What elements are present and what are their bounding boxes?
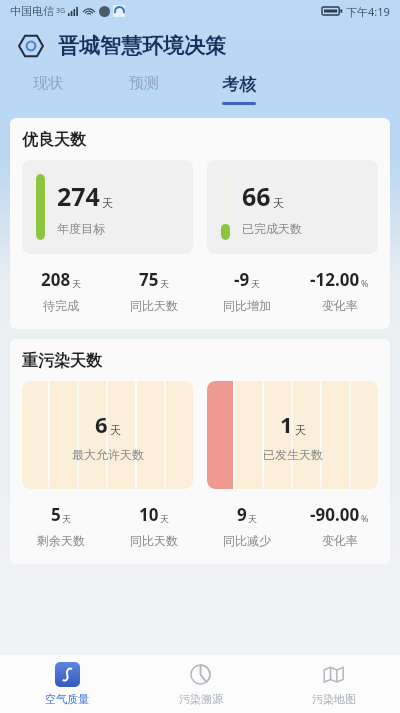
staticText: 3G (56, 6, 66, 16)
staticText: 最大允许天数 (72, 447, 144, 462)
staticText: 优良天数 (22, 130, 86, 150)
staticText: 天 (295, 423, 306, 437)
button[interactable]: 75 (107, 268, 200, 313)
staticText: % (361, 512, 369, 524)
staticText: -12.00 (310, 268, 360, 291)
other: 污染地图 (321, 662, 346, 687)
button[interactable]: Logo (16, 31, 46, 61)
staticText: 75 (139, 268, 159, 291)
staticText: 208 (41, 268, 71, 291)
staticText: 天 (102, 196, 113, 210)
staticText: 天 (160, 278, 169, 289)
button[interactable]: 5 (14, 503, 107, 548)
staticText: -9 (234, 268, 250, 291)
staticText: 同比天数 (130, 298, 178, 313)
staticText: 重污染天数 (22, 351, 102, 371)
button[interactable]: -9 (200, 268, 293, 313)
staticText: 同比天数 (130, 533, 178, 548)
button[interactable]: 274 (22, 160, 193, 254)
staticText: 274 (57, 179, 100, 213)
button[interactable]: 208 (14, 268, 107, 313)
other: 污染溯源 (188, 662, 213, 687)
staticText: 天 (273, 196, 284, 210)
button[interactable]: 10 (107, 503, 200, 548)
staticText: 年度目标 (57, 221, 105, 236)
staticText: 天 (72, 278, 81, 289)
button[interactable]: 预测 (96, 70, 191, 112)
button[interactable]: -90.00 (293, 503, 386, 548)
button[interactable]: 空气质量 (0, 655, 134, 713)
staticText: 考核 (222, 74, 256, 95)
staticText: 现状 (33, 74, 63, 93)
staticText: 天 (110, 423, 121, 437)
staticText: 天 (62, 513, 71, 524)
staticText: 天 (160, 513, 169, 524)
button[interactable]: 污染溯源 (134, 655, 267, 713)
staticText: 天 (248, 513, 257, 524)
button[interactable]: 1 (207, 381, 378, 489)
staticText: 已发生天数 (263, 447, 323, 462)
staticText: 同比减少 (223, 533, 271, 548)
staticText: 污染溯源 (179, 692, 223, 706)
button[interactable]: 6 (22, 381, 193, 489)
staticText: 5 (51, 503, 61, 526)
staticText: 预测 (129, 74, 159, 93)
staticText: 空气质量 (45, 692, 89, 706)
staticText: 9 (237, 503, 247, 526)
staticText: 天 (251, 278, 260, 289)
button[interactable]: 66 (207, 160, 378, 254)
staticText: 变化率 (322, 298, 358, 313)
button[interactable]: 污染地图 (267, 655, 400, 713)
staticText: 污染地图 (312, 692, 356, 706)
button[interactable]: 考核 (191, 70, 286, 112)
other: 空气质量 (55, 662, 80, 687)
staticText: 变化率 (322, 533, 358, 548)
staticText: 已完成天数 (242, 221, 302, 236)
staticText: -90.00 (310, 503, 360, 526)
staticText: 剩余天数 (37, 533, 85, 548)
button[interactable]: 9 (200, 503, 293, 548)
staticText: 晋城智慧环境决策 (58, 33, 226, 59)
staticText: % (361, 277, 369, 289)
staticText: 1 (280, 409, 293, 439)
button[interactable]: 现状 (0, 70, 96, 112)
staticText: 6 (95, 409, 108, 439)
staticText: 10 (139, 503, 159, 526)
staticText: 下午4:19 (346, 4, 390, 19)
staticText: 中国电信 (10, 4, 54, 18)
staticText: 同比增加 (223, 298, 271, 313)
staticText: 待完成 (43, 298, 79, 313)
button[interactable]: -12.00 (293, 268, 386, 313)
staticText: 66 (242, 179, 271, 213)
